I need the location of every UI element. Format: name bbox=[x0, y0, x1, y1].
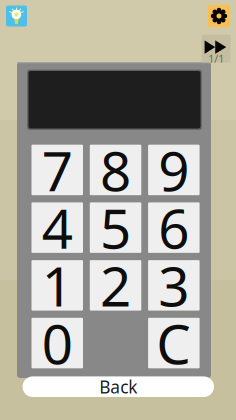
staticText: Back bbox=[99, 375, 137, 398]
button[interactable]: C bbox=[148, 318, 200, 368]
staticText: 7 bbox=[42, 134, 73, 206]
staticText: C bbox=[156, 307, 191, 379]
staticText: 5 bbox=[100, 191, 131, 264]
staticText: 8 bbox=[100, 134, 131, 206]
button[interactable]: 4 bbox=[31, 202, 83, 253]
button[interactable]: 7 bbox=[31, 145, 83, 195]
staticText: 1 bbox=[42, 249, 73, 322]
button[interactable]: Next puzzle bbox=[202, 35, 230, 62]
staticText: 0 bbox=[42, 307, 73, 379]
staticText: 6 bbox=[158, 191, 189, 264]
staticText: 3 bbox=[158, 249, 189, 322]
button[interactable]: 0 bbox=[31, 318, 83, 368]
staticText: 9 bbox=[158, 134, 189, 206]
staticText: 1/1 bbox=[208, 52, 224, 66]
button[interactable]: 5 bbox=[90, 202, 141, 253]
button[interactable]: 8 bbox=[90, 145, 141, 195]
button[interactable]: 2 bbox=[90, 260, 141, 311]
button[interactable]: 9 bbox=[148, 145, 200, 195]
button[interactable]: 6 bbox=[148, 202, 200, 253]
staticText: 4 bbox=[42, 191, 73, 264]
button[interactable]: Back bbox=[22, 376, 214, 397]
button[interactable]: 3 bbox=[148, 260, 200, 311]
button[interactable]: 1 bbox=[31, 260, 83, 311]
button[interactable]: Hint bbox=[6, 5, 27, 26]
staticText: 2 bbox=[100, 249, 131, 322]
button[interactable]: Settings bbox=[208, 5, 230, 27]
